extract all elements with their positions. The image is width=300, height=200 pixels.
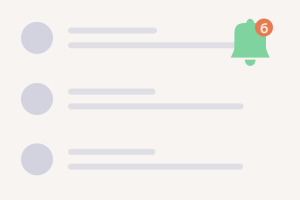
button[interactable]: Notifications, 6 unread (228, 17, 272, 67)
staticText: 6 (260, 18, 268, 37)
